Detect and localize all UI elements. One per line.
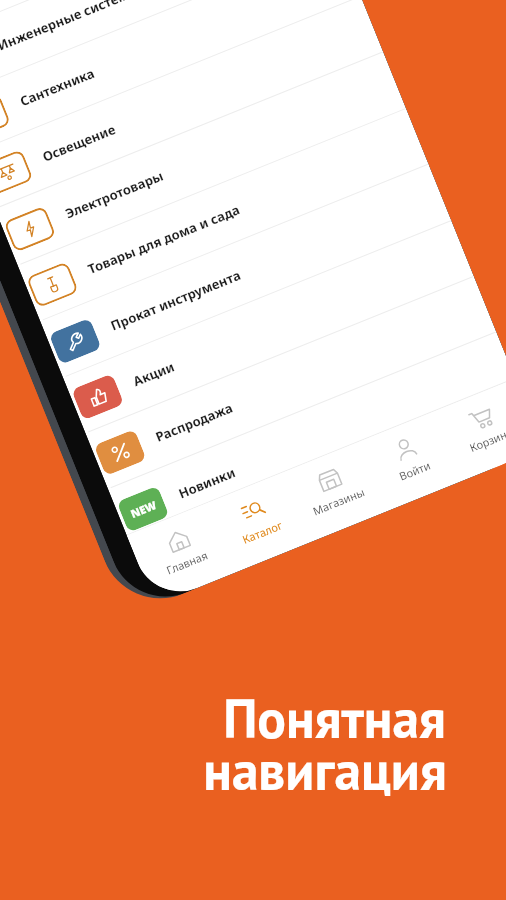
- button[interactable]: Главная: [136, 515, 227, 585]
- button[interactable]: Распродажа: [86, 277, 497, 489]
- staticText: Новинки: [176, 463, 238, 502]
- button[interactable]: Электротовары: [0, 53, 406, 266]
- staticText: Войти: [397, 457, 433, 484]
- button[interactable]: Товары для дома и сада: [18, 109, 429, 321]
- staticText: Освещение: [40, 120, 119, 166]
- button[interactable]: Акции: [63, 221, 474, 434]
- staticText: Корзина: [467, 424, 506, 455]
- button[interactable]: Сантехника: [0, 0, 361, 154]
- staticText: Электротовары: [62, 166, 167, 222]
- staticText: NEW: [128, 497, 159, 521]
- staticText: Распродажа: [153, 398, 236, 446]
- staticText: Прокат инструмента: [108, 266, 243, 335]
- button[interactable]: Корзина: [439, 393, 506, 462]
- staticText: Каталог: [240, 517, 285, 547]
- button[interactable]: Магазины: [287, 454, 379, 524]
- staticText: Магазины: [310, 484, 367, 518]
- button[interactable]: NEW: [108, 333, 506, 546]
- staticText: Сантехника: [17, 64, 97, 110]
- staticText: Главная: [164, 547, 210, 578]
- staticText: Товары для дома и сада: [85, 200, 243, 278]
- button[interactable]: Отделочные материалы: [0, 0, 316, 41]
- staticText: Инженерные системы: [0, 0, 141, 55]
- staticText: навигация: [203, 736, 447, 805]
- button[interactable]: Войти: [363, 423, 455, 493]
- button[interactable]: Инженерные системы: [0, 0, 338, 98]
- button[interactable]: Каталог: [211, 485, 303, 554]
- staticText: Акции: [130, 357, 177, 390]
- staticText: Понятная: [223, 684, 446, 753]
- button[interactable]: Освещение: [0, 0, 383, 209]
- button[interactable]: Прокат инструмента: [41, 165, 452, 378]
